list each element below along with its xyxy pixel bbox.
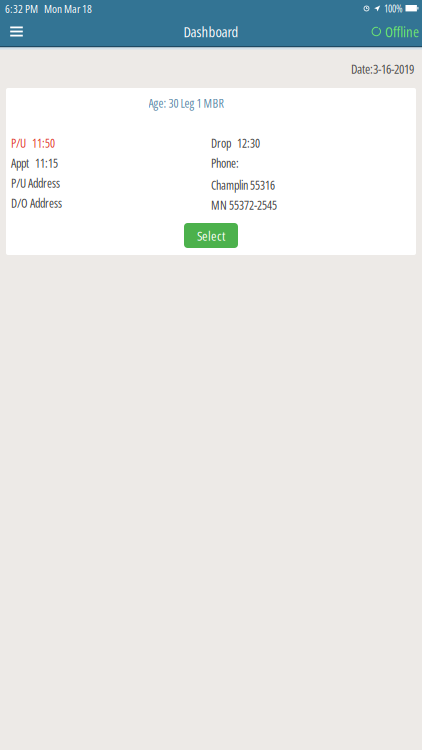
staticText: Mon Mar 18	[44, 1, 92, 16]
button[interactable]: Menu	[0, 17, 33, 45]
staticText: Age: 30 Leg 1 MBR	[148, 95, 223, 111]
staticText: Select	[197, 226, 225, 245]
staticText: MN 55372-2545	[211, 197, 277, 213]
staticText: Appt 11:15	[11, 155, 58, 171]
staticText: P/U 11:50	[11, 135, 55, 151]
staticText: 6:32 PM	[5, 1, 38, 16]
button[interactable]: Select	[184, 223, 238, 248]
staticText: Dashboard	[183, 21, 238, 41]
staticText: Champlin 55316	[211, 177, 275, 193]
staticText: P/U Address	[11, 175, 60, 191]
staticText: Drop 12:30	[211, 135, 260, 151]
button[interactable]: Offline	[372, 17, 422, 45]
staticText: Phone:	[211, 155, 239, 171]
staticText: D/O Address	[11, 195, 62, 211]
staticText: 100%	[384, 2, 403, 15]
staticText: Date:3-16-2019	[351, 60, 414, 77]
staticText: Offline	[385, 21, 419, 41]
